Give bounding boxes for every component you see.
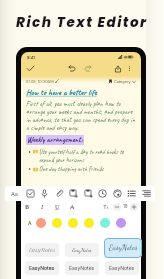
button[interactable]: Increase font size [130,203,138,211]
button[interactable]: Highlight colour 1 [36,218,46,228]
staticText: One day shopping with friends [39,165,104,173]
button[interactable]: EasyNotes [65,261,99,275]
button[interactable]: Highlight colour 2 [52,218,62,228]
button[interactable]: EasyNotes [105,243,139,257]
button[interactable]: Decrease font size [113,203,121,211]
staticText: Category [114,79,131,84]
staticText: 9:41 [27,55,35,60]
staticText: t [107,205,109,210]
button[interactable]: Category [108,79,136,84]
staticText: Rich Text Editor [16,13,148,32]
button[interactable]: Highlight colour 4 [84,218,94,228]
button[interactable]: Voice note [40,189,49,198]
staticText: A [28,220,32,226]
button[interactable]: EasyNotes [25,261,59,275]
button[interactable]: A [68,202,77,211]
button[interactable]: Save [84,189,93,198]
staticText: EasyNotes [29,247,56,253]
button[interactable]: Attach file [55,189,64,198]
button[interactable]: Redo [84,64,93,73]
staticText: EasyNotes [69,265,95,271]
button[interactable]: EasyNotes [25,243,59,257]
staticText: How to have a better life [26,87,97,98]
button[interactable]: Undo [67,64,76,73]
button[interactable]: Highlight colour 5 [100,218,110,228]
button[interactable]: B [23,202,32,211]
staticText: Weekly arrangement: [27,135,83,145]
button[interactable]: Colour [113,189,122,198]
button[interactable]: Aa [10,189,20,199]
button[interactable]: U [53,202,62,211]
button[interactable]: Share [114,65,122,73]
staticText: 01.08, 10:30AM [26,79,54,84]
staticText: EasyNotes [109,265,135,271]
button[interactable]: More options [126,65,133,72]
button[interactable]: Insert image [69,189,78,198]
staticText: A [70,203,75,211]
button[interactable]: Save note [26,64,35,73]
staticText: Use yourself half a day to read books to… [39,148,136,164]
staticText: EasyNotes [29,265,55,271]
button[interactable]: Reminder [98,189,107,198]
staticText: B [25,203,30,211]
staticText: EasyNotes [109,243,138,253]
button[interactable]: A [28,220,32,226]
button[interactable]: Highlight colour 6 [116,218,126,228]
staticText: First of all, you must clearly plan how … [26,99,137,132]
button[interactable]: Highlight colour 3 [68,218,78,228]
button[interactable]: EasyNotes [65,243,99,257]
staticText: U [55,203,60,211]
staticText: I [41,203,44,211]
button[interactable]: EasyNotes [104,238,142,258]
button[interactable]: I [38,202,47,211]
button[interactable]: Bulleted list [127,189,136,198]
button[interactable]: Checklist [26,189,35,198]
staticText: Aa [11,191,19,198]
staticText: EasyNotes [111,246,133,254]
button[interactable]: T [103,203,109,210]
button[interactable]: EasyNotes [105,261,139,275]
staticText: T [103,203,107,210]
staticText: 18 [123,204,128,210]
button[interactable]: Alignment [142,189,151,198]
staticText: EasyNotes [72,247,92,254]
